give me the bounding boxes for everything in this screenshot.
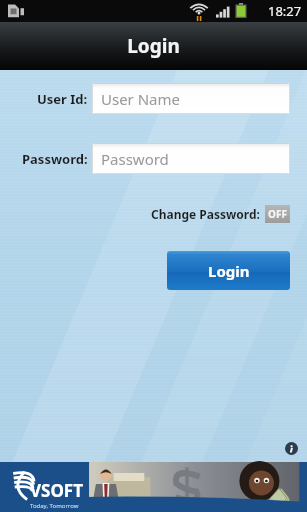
- button[interactable]: Ad information: [281, 438, 301, 458]
- staticText: Change Password:: [151, 206, 260, 222]
- staticText: User Name: [101, 89, 181, 109]
- staticText: Password:: [22, 150, 88, 168]
- staticText: 18:27: [268, 2, 302, 20]
- staticText: User Id:: [37, 90, 88, 108]
- button[interactable]: Change Password:: [151, 205, 290, 223]
- button[interactable]: Login: [167, 251, 290, 290]
- staticText: OFF: [268, 207, 287, 221]
- button[interactable]: User Name: [92, 83, 290, 114]
- staticText: Login: [208, 261, 250, 281]
- staticText: Login: [127, 33, 180, 59]
- button[interactable]: Password: [92, 143, 290, 174]
- button[interactable]: VSOFT advertisement: [0, 462, 307, 512]
- staticText: Password: [101, 149, 169, 169]
- staticText: Today, Tomorrow: [30, 502, 79, 510]
- staticText: VSOFT: [30, 479, 84, 502]
